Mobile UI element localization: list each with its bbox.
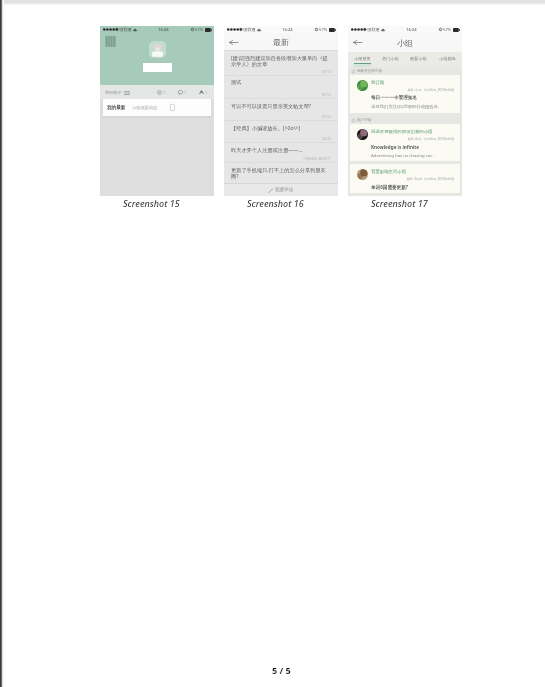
staticText: 16:24 bbox=[406, 27, 417, 33]
staticText: 【经典】小编请放长。[^0o\^] bbox=[231, 124, 301, 131]
button[interactable]: 说说不用微信的朋友们看的小组 bbox=[350, 124, 460, 161]
staticText: 5 / 5 bbox=[272, 664, 291, 676]
staticText: 1 bbox=[184, 90, 187, 95]
staticText: Screenshot 15 bbox=[123, 197, 180, 209]
staticText: 16:24 bbox=[158, 27, 169, 33]
staticText: Advertising has us chasing car... bbox=[371, 152, 435, 158]
staticText: 1 bbox=[205, 90, 208, 95]
staticText: 07-13 bbox=[231, 92, 331, 97]
staticText: 小组 bbox=[397, 38, 413, 48]
staticText: 06-30 bbox=[231, 136, 331, 141]
button[interactable]: 我的帖子 bbox=[105, 90, 130, 95]
staticText: 我的帖子 bbox=[105, 90, 122, 95]
staticText: 中国联通 bbox=[363, 27, 380, 32]
button[interactable]: 最新小组 bbox=[404, 52, 433, 64]
staticText: 我订阅 bbox=[371, 80, 385, 86]
staticText: Knowledge is infinite bbox=[371, 144, 420, 150]
staticText: 最新 bbox=[273, 37, 289, 47]
button[interactable]: 测试 bbox=[224, 76, 338, 99]
button[interactable]: 更新了手机端只,打不上的怎么分享到朋友圈? bbox=[224, 163, 338, 183]
staticText: 最新: 3天前 今天有用_2013年阅读 bbox=[371, 177, 454, 181]
staticText: 07-12 bbox=[231, 114, 331, 119]
button[interactable]: chat bbox=[178, 90, 187, 95]
staticText: 57% bbox=[443, 27, 452, 33]
staticText: 更新了手机端只,打不上的怎么分享到朋友圈? bbox=[231, 166, 331, 180]
staticText: 16:24 bbox=[282, 27, 293, 33]
staticText: 昨天才弄个人注册或注册——… bbox=[231, 146, 303, 153]
button[interactable]: 我的最新 bbox=[103, 99, 211, 116]
staticText: 可以不可以设置只显示英文帖文帮? bbox=[231, 102, 312, 109]
staticText: 小组首页 bbox=[354, 56, 371, 61]
staticText: 1 bbox=[163, 90, 166, 95]
staticText: 最新: 昨天 今天有用_2013年阅读 bbox=[371, 137, 454, 141]
button[interactable]: 我订阅 bbox=[350, 75, 460, 113]
button[interactable]: 小组精选 bbox=[433, 52, 462, 64]
staticText: 我要评论 bbox=[275, 187, 294, 193]
staticText: 最新: 今天 今天有用_2013年阅读 bbox=[371, 88, 454, 92]
staticText: 57% bbox=[319, 27, 328, 33]
staticText: 小组最新动态 bbox=[132, 105, 158, 110]
button[interactable]: star bbox=[199, 90, 208, 95]
staticText: 说说不用微信的朋友们看的小组 bbox=[371, 129, 433, 135]
button[interactable]: QR code bbox=[105, 36, 116, 47]
staticText: 中国联通 bbox=[115, 27, 132, 32]
staticText: 背景影响生活小组 bbox=[371, 169, 407, 175]
button[interactable]: [建议]强烈建议加自各段增加大量单向《提示学人》的文章 bbox=[224, 51, 338, 76]
staticText: 单词6国需要更新? bbox=[371, 184, 408, 190]
staticText: [建议]强烈建议加自各段增加大量单向《提示学人》的文章 bbox=[231, 54, 331, 67]
staticText: 中国联通 bbox=[239, 27, 256, 32]
staticText: 我最关注的小组 bbox=[357, 69, 383, 74]
staticText: 57% bbox=[195, 27, 204, 33]
button[interactable]: 我要评论 bbox=[224, 183, 338, 196]
button[interactable]: 小组首页 bbox=[348, 52, 376, 64]
button[interactable]: 可以不可以设置只显示英文帖文帮? bbox=[224, 99, 338, 121]
button[interactable]: 热门小组 bbox=[376, 52, 404, 64]
staticText: 07-13 bbox=[231, 69, 331, 74]
staticText: 最新小组 bbox=[410, 56, 427, 61]
staticText: 我的最新 bbox=[107, 105, 126, 111]
staticText: 测试 bbox=[231, 79, 242, 86]
staticText: 这是我们关注QQ后面的行动报告见. bbox=[371, 103, 440, 109]
button[interactable]: Back bbox=[227, 36, 240, 49]
staticText: Screenshot 16 bbox=[247, 197, 304, 209]
staticText: 热门小组 bbox=[382, 56, 399, 61]
button[interactable]: Back bbox=[351, 36, 364, 49]
button[interactable]: 昨天才弄个人注册或注册——… bbox=[224, 143, 338, 163]
staticText: Screenshot 17 bbox=[371, 197, 428, 209]
button[interactable]: 【经典】小编请放长。[^0o\^] bbox=[224, 121, 338, 143]
staticText: 每日一一一今管理知名 bbox=[371, 95, 417, 101]
staticText: 热门小组 bbox=[357, 118, 372, 123]
button[interactable]: 背景影响生活小组 bbox=[350, 164, 460, 193]
button[interactable] bbox=[149, 41, 166, 58]
button[interactable]: eye bbox=[157, 90, 166, 95]
staticText: 小组精选 bbox=[439, 56, 456, 61]
staticText: 中国移动 08-08 下 bbox=[231, 156, 331, 161]
